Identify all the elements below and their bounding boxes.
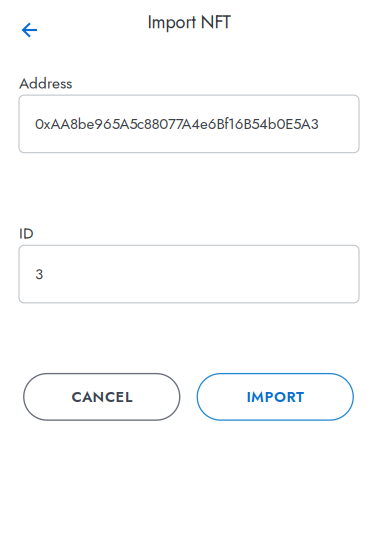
staticText: Import NFT — [147, 9, 230, 35]
staticText: IMPORT — [246, 386, 304, 407]
staticText: Address — [19, 72, 72, 94]
button[interactable]: IMPORT — [197, 374, 353, 420]
staticText: ID — [19, 222, 33, 244]
button[interactable]: Back — [11, 11, 49, 49]
staticText: 0xAA8be965A5c88077A4e6Bf16B54b0E5A3 — [35, 113, 318, 135]
staticText: 3 — [35, 263, 43, 285]
staticText: CANCEL — [71, 386, 132, 407]
button[interactable]: CANCEL — [24, 374, 180, 420]
